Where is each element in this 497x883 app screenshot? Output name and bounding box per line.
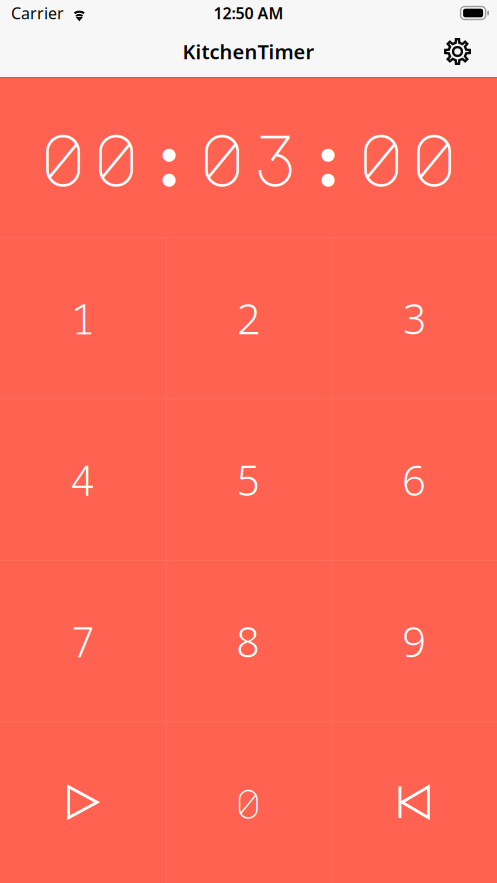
button[interactable]: 8 (166, 560, 331, 721)
staticText: KitchenTimer (182, 38, 314, 65)
staticText: 6 (401, 450, 427, 508)
button[interactable]: 7 (0, 560, 166, 721)
staticText: 0 (233, 782, 263, 822)
staticText: 3 (401, 289, 427, 347)
button[interactable]: 4 (0, 398, 166, 560)
staticText: 1 (70, 289, 96, 347)
staticText: 2 (235, 289, 261, 347)
button[interactable]: 5 (166, 398, 331, 560)
button[interactable]: 9 (331, 560, 497, 721)
button[interactable]: 1 (0, 237, 166, 398)
staticText: 12:50 AM (213, 2, 283, 24)
staticText: 7 (70, 612, 96, 670)
button[interactable]: 2 (166, 237, 331, 398)
button[interactable]: 3 (331, 237, 497, 398)
button[interactable]: 0 (166, 721, 331, 883)
button[interactable]: 6 (331, 398, 497, 560)
staticText: 5 (235, 450, 261, 508)
button[interactable]: Start timer (0, 721, 166, 883)
button[interactable]: Settings (430, 27, 497, 76)
button[interactable]: Reset timer (331, 721, 497, 883)
staticText: 8 (235, 612, 261, 670)
staticText: 4 (70, 450, 96, 508)
staticText: Carrier (11, 2, 64, 24)
staticText: 9 (401, 612, 427, 670)
staticText: 00:03:00 (36, 121, 460, 193)
